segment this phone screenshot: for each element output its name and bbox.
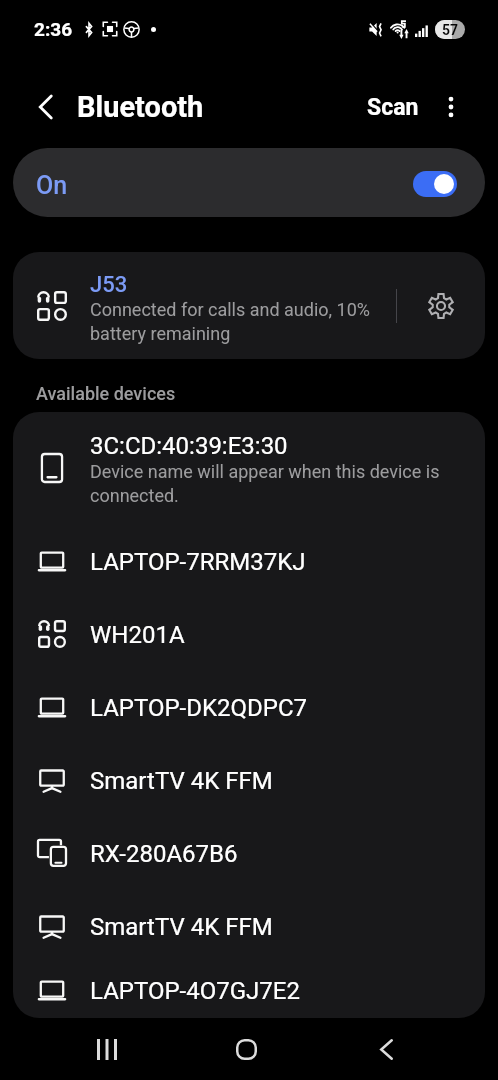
button[interactable]: Navigate up — [27, 88, 65, 126]
button[interactable]: LAPTOP-DK2QDPC7 — [13, 670, 485, 743]
staticText: Device name will appear when this device… — [90, 461, 450, 506]
button[interactable]: LAPTOP-4O7GJ7E2 — [13, 962, 485, 1018]
button[interactable]: SmartTV 4K FFM — [13, 743, 485, 816]
staticText: SmartTV 4K FFM — [90, 767, 273, 795]
staticText: J53 — [90, 272, 128, 298]
staticText: Connected for calls and audio, 10% batte… — [90, 299, 392, 344]
button[interactable]: RX-280A67B6 — [13, 816, 485, 889]
staticText: SmartTV 4K FFM — [90, 913, 273, 941]
button[interactable]: Scan — [355, 85, 431, 129]
button[interactable]: On — [13, 148, 485, 217]
staticText: LAPTOP-4O7GJ7E2 — [90, 977, 300, 1005]
button[interactable]: Recent apps — [37, 1018, 177, 1080]
staticText: Bluetooth — [77, 90, 204, 124]
button[interactable]: WH201A — [13, 597, 485, 670]
button[interactable]: Back — [316, 1018, 456, 1080]
staticText: On — [36, 171, 68, 200]
button[interactable]: LAPTOP-7RRM37KJ — [13, 524, 485, 597]
button[interactable]: More options — [432, 88, 470, 126]
button[interactable]: SmartTV 4K FFM — [13, 889, 485, 962]
staticText: Scan — [367, 94, 419, 121]
staticText: WH201A — [90, 621, 185, 649]
staticText: 3C:CD:40:39:E3:30 — [90, 432, 288, 460]
button[interactable]: 3C:CD:40:39:E3:30 — [13, 412, 485, 524]
staticText: RX-280A67B6 — [90, 840, 238, 868]
button[interactable]: Home — [176, 1018, 316, 1080]
staticText: Available devices — [36, 383, 176, 404]
button[interactable]: Device settings — [403, 252, 478, 359]
staticText: 57 — [442, 22, 459, 38]
staticText: 2:36 — [34, 18, 73, 40]
button[interactable]: J53 — [13, 252, 485, 359]
staticText: LAPTOP-7RRM37KJ — [90, 548, 306, 576]
staticText: LAPTOP-DK2QDPC7 — [90, 694, 308, 722]
